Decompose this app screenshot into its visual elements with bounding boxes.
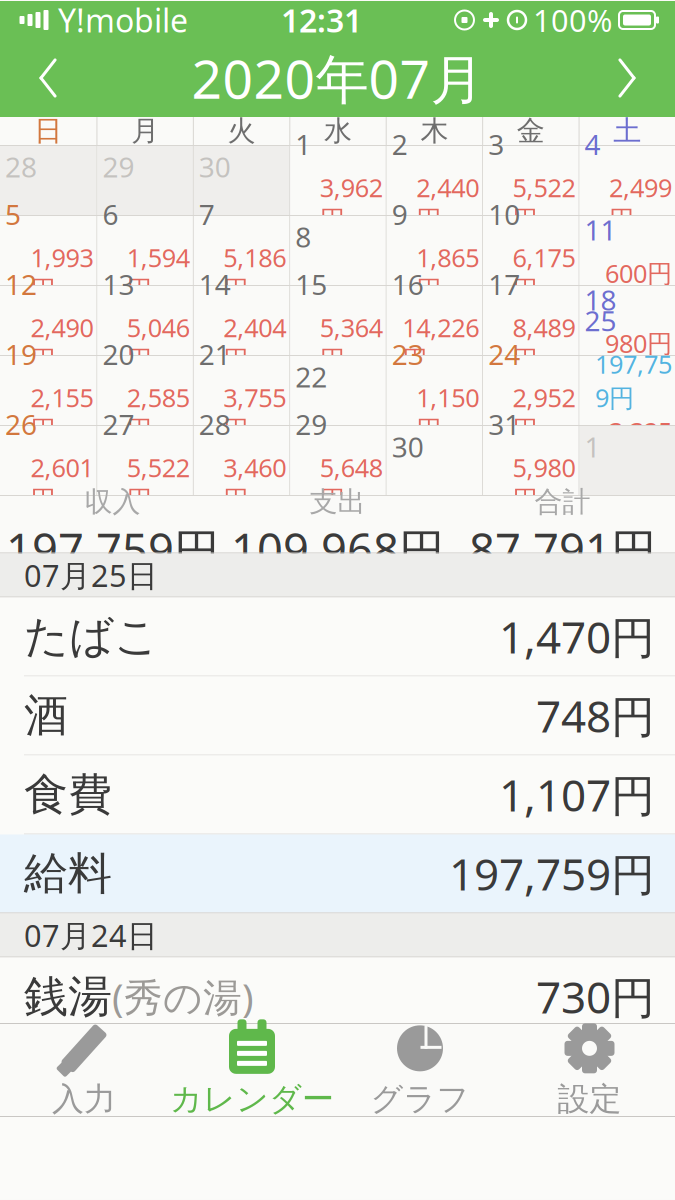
- staticText: 23: [392, 335, 424, 373]
- staticText: 6,175円: [513, 241, 576, 305]
- staticText: 2,952円: [513, 381, 576, 445]
- staticText: 14,226円: [402, 311, 479, 375]
- staticText: 600円: [605, 256, 672, 290]
- staticText: 銭湯: [24, 969, 112, 1023]
- staticText: 収入: [84, 485, 140, 519]
- staticText: 29: [102, 148, 134, 185]
- staticText: 24: [488, 335, 520, 373]
- staticText: 19: [5, 335, 37, 373]
- staticText: 1,993円: [30, 241, 93, 305]
- staticText: 8,489円: [513, 311, 576, 375]
- staticText: 入力: [52, 1079, 116, 1119]
- staticText: 日: [34, 114, 62, 148]
- staticText: 5,046円: [127, 311, 190, 375]
- staticText: 9: [392, 195, 408, 233]
- staticText: 火: [228, 114, 256, 148]
- staticText: 2,490円: [30, 311, 93, 375]
- staticText: 14: [199, 265, 231, 303]
- staticText: Y!mobile: [58, 0, 188, 41]
- button[interactable]: カレンダー: [168, 1024, 336, 1116]
- staticText: 木: [420, 114, 448, 148]
- staticText: 22: [295, 358, 327, 395]
- button[interactable]: 銭湯: [0, 957, 675, 1035]
- staticText: 2,585円: [127, 381, 190, 445]
- staticText: 2020年07月: [191, 43, 483, 113]
- staticText: 10: [488, 195, 520, 233]
- staticText: 980円: [605, 326, 672, 360]
- staticText: 15: [295, 265, 327, 303]
- staticText: 26: [5, 405, 37, 443]
- button[interactable]: 次の月: [579, 39, 675, 117]
- button[interactable]: 酒: [0, 676, 675, 754]
- button[interactable]: 食費: [0, 755, 675, 833]
- staticText: 18: [585, 281, 617, 318]
- staticText: 2,499円: [609, 171, 672, 235]
- staticText: 730円: [536, 967, 655, 1026]
- staticText: たばこ: [24, 609, 159, 663]
- staticText: 25: [585, 302, 617, 339]
- staticText: 197,759円: [6, 519, 219, 579]
- staticText: 5,522円: [513, 171, 576, 235]
- staticText: 197,759円: [595, 347, 672, 414]
- staticText: 1,150円: [416, 381, 479, 445]
- staticText: 月: [131, 114, 159, 148]
- staticText: 2,404円: [223, 311, 286, 375]
- staticText: 28: [5, 148, 37, 185]
- staticText: カレンダー: [170, 1079, 334, 1119]
- staticText: 食費: [24, 767, 112, 821]
- staticText: 30: [199, 148, 231, 185]
- staticText: 109,968円: [231, 519, 444, 579]
- staticText: 197,759円: [449, 844, 655, 903]
- staticText: 土: [613, 114, 641, 148]
- staticText: 酒: [24, 688, 68, 742]
- button[interactable]: 設定: [504, 1024, 675, 1116]
- staticText: 100%: [533, 0, 612, 40]
- staticText: グラフ: [370, 1079, 469, 1119]
- staticText: 1: [585, 428, 601, 465]
- staticText: 2,601円: [30, 451, 93, 515]
- staticText: 30: [392, 428, 424, 465]
- staticText: (秀の湯): [112, 971, 254, 1022]
- button[interactable]: グラフ: [336, 1024, 504, 1116]
- staticText: 5,364円: [320, 311, 383, 375]
- button[interactable]: 給料: [0, 834, 675, 912]
- staticText: 5,186円: [223, 241, 286, 305]
- staticText: 5,980円: [513, 451, 576, 515]
- button[interactable]: 前の月: [0, 39, 96, 117]
- staticText: 3: [488, 125, 504, 163]
- staticText: 給料: [24, 846, 112, 900]
- staticText: 1,594円: [127, 241, 190, 305]
- staticText: 合計: [534, 485, 590, 519]
- staticText: 2: [392, 125, 408, 163]
- staticText: 12: [5, 265, 37, 303]
- staticText: 水: [324, 114, 352, 148]
- staticText: 20: [102, 335, 134, 373]
- staticText: 6: [102, 195, 118, 233]
- staticText: 16: [392, 265, 424, 303]
- staticText: 4: [585, 125, 601, 163]
- button[interactable]: たばこ: [0, 597, 675, 675]
- staticText: 5,648円: [320, 451, 383, 515]
- staticText: 3,325円: [609, 414, 672, 479]
- staticText: 1: [295, 125, 311, 163]
- staticText: 87,791円: [469, 519, 656, 579]
- staticText: 3,962円: [320, 171, 383, 235]
- button[interactable]: 入力: [0, 1024, 168, 1116]
- staticText: 1,470円: [499, 607, 655, 666]
- staticText: 7: [199, 195, 215, 233]
- staticText: 5: [5, 195, 21, 233]
- staticText: 5,522円: [127, 451, 190, 515]
- staticText: 2,440円: [416, 171, 479, 235]
- staticText: 8: [295, 218, 311, 255]
- staticText: 17: [488, 265, 520, 303]
- staticText: 12:31: [281, 0, 362, 41]
- staticText: 金: [517, 114, 545, 148]
- staticText: 07月25日: [24, 555, 158, 595]
- staticText: 2,155円: [30, 381, 93, 445]
- staticText: 29: [295, 405, 327, 443]
- staticText: 07月24日: [24, 915, 158, 955]
- staticText: 748円: [536, 686, 655, 745]
- staticText: 31: [488, 405, 520, 443]
- staticText: 3,460円: [223, 451, 286, 515]
- staticText: 11: [585, 211, 617, 248]
